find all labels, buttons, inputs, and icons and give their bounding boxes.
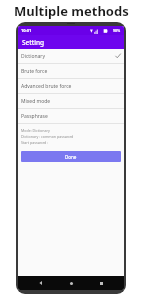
button[interactable]: Brute force (18, 64, 124, 79)
button[interactable]: Advanced brute force (18, 79, 124, 94)
button[interactable]: Mixed mode (18, 94, 124, 109)
staticText: Multiple methods (14, 2, 129, 20)
button[interactable]: Back (34, 276, 48, 290)
button[interactable]: Dictionary (18, 49, 124, 64)
button[interactable]: Home (64, 276, 78, 290)
staticText: Done (65, 154, 77, 160)
staticText: Dictionary : common password (21, 134, 74, 139)
staticText: Dictionary (21, 53, 45, 60)
button[interactable]: Done (21, 151, 121, 162)
staticText: Start password : (21, 140, 49, 145)
staticText: Setting (22, 38, 45, 47)
button[interactable]: Passphrase (18, 109, 124, 124)
staticText: Brute force (21, 68, 48, 75)
staticText: Advanced brute force (21, 83, 72, 90)
staticText: Mixed mode (21, 98, 51, 105)
staticText: 98% (113, 28, 121, 33)
other: Selected (115, 53, 121, 59)
staticText: Mode: Dictionary (21, 128, 50, 133)
staticText: Passphrase (21, 113, 48, 120)
button[interactable]: Recent apps (94, 276, 108, 290)
staticText: 10:01 (21, 28, 32, 33)
